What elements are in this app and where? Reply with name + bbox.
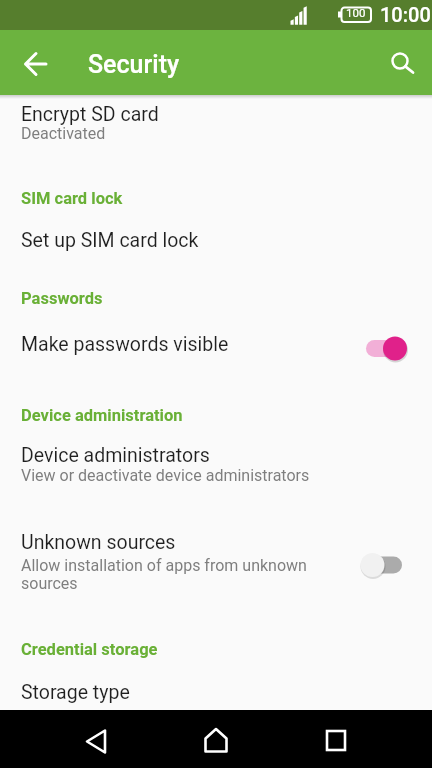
button[interactable] (376, 37, 424, 85)
staticText: Device administration (21, 406, 183, 425)
button[interactable]: Make passwords visible (0, 318, 432, 378)
staticText: Deactivated (21, 124, 106, 143)
staticText: Storage type (21, 681, 130, 704)
staticText: Security (88, 50, 180, 79)
staticText: sources (21, 574, 78, 593)
staticText: View or deactivate device administrators (21, 466, 310, 485)
staticText: 100 (346, 6, 366, 19)
staticText: Device administrators (21, 444, 210, 467)
staticText: Set up SIM card lock (21, 229, 199, 252)
staticText: SIM card lock (21, 189, 123, 208)
button[interactable]: Encrypt SD card (0, 95, 432, 162)
staticText: 10:00 (380, 3, 431, 26)
staticText: Unknown sources (21, 531, 176, 554)
button[interactable]: Set up SIM card lock (0, 213, 432, 270)
button[interactable] (306, 710, 366, 768)
staticText: Encrypt SD card (21, 103, 159, 126)
staticText: Make passwords visible (21, 333, 229, 356)
button[interactable] (12, 40, 60, 88)
button[interactable] (186, 710, 246, 768)
button[interactable]: Device administrators (0, 432, 432, 505)
staticText: Credential storage (21, 640, 158, 659)
staticText: Allow installation of apps from unknown (21, 556, 307, 575)
staticText: Passwords (21, 289, 103, 308)
button[interactable] (66, 710, 126, 768)
button[interactable]: Storage type (0, 665, 432, 710)
button[interactable]: Unknown sources (0, 520, 432, 600)
